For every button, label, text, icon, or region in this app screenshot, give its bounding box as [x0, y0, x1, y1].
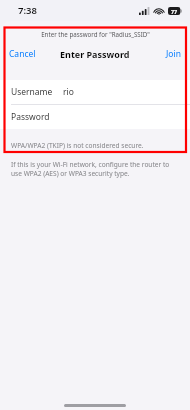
staticText: 77 — [171, 8, 178, 15]
staticText: Join — [166, 48, 181, 60]
staticText: Cancel — [9, 48, 36, 60]
staticText: rio — [63, 86, 74, 98]
staticText: 7:38 — [18, 4, 37, 17]
staticText: Enter the password for "Radius_SSID" — [41, 30, 150, 38]
staticText: Username — [11, 86, 53, 98]
staticText: If this is your Wi-Fi network, configure… — [11, 160, 175, 178]
button[interactable]: Join — [163, 46, 184, 62]
staticText: Password — [11, 111, 50, 123]
staticText: WPA/WPA2 (TKIP) is not considered secure… — [11, 141, 144, 150]
button[interactable]: Password — [0, 105, 190, 129]
button[interactable]: Cancel — [6, 46, 39, 62]
button[interactable]: Username — [0, 80, 190, 104]
staticText: Enter Password — [60, 48, 130, 60]
